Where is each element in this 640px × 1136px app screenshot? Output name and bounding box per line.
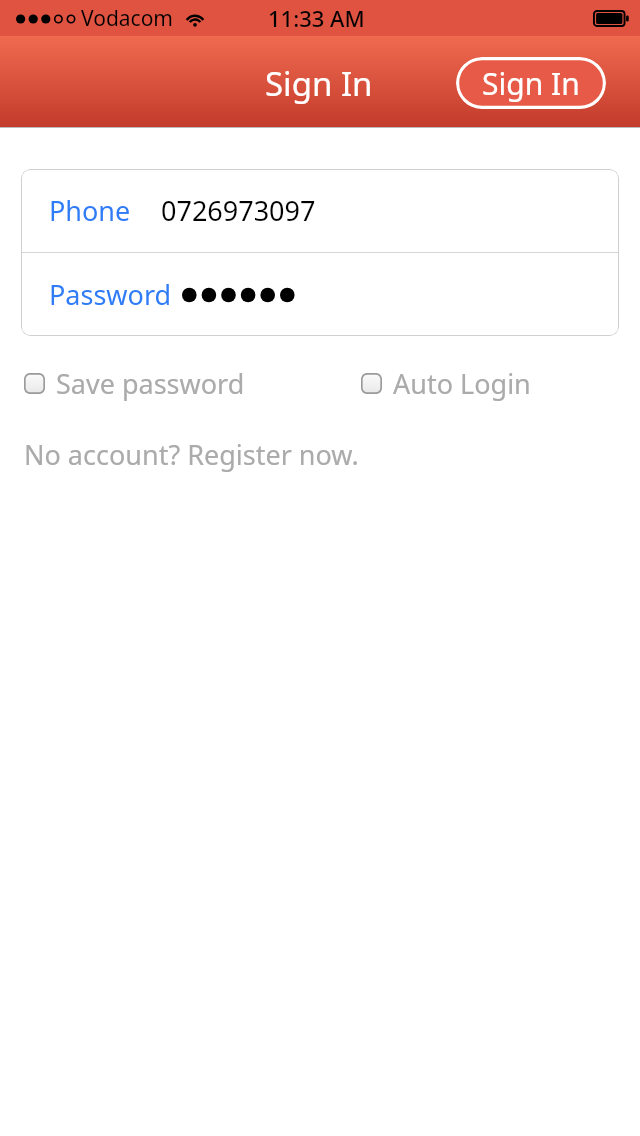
button[interactable]: Password — [21, 253, 619, 336]
button[interactable]: Save password — [24, 365, 245, 402]
staticText: Auto Login — [393, 365, 531, 402]
button[interactable]: Auto Login — [361, 365, 531, 402]
staticText: Sign In — [265, 61, 373, 106]
staticText: Phone — [49, 192, 131, 229]
button[interactable]: Phone — [21, 169, 619, 252]
staticText: Password — [49, 276, 172, 313]
button[interactable]: Sign In — [456, 57, 606, 109]
staticText: Save password — [56, 365, 245, 402]
staticText: 11:33 AM — [268, 3, 365, 33]
staticText: Vodacom — [81, 4, 174, 33]
button[interactable]: No account? Register now. — [24, 436, 359, 473]
staticText: Sign In — [482, 63, 580, 104]
staticText: 0726973097 — [161, 192, 316, 229]
staticText: No account? Register now. — [24, 436, 359, 473]
